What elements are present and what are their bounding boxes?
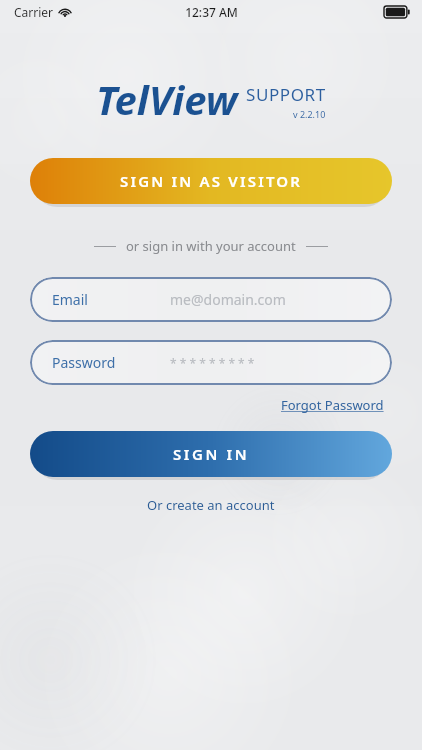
staticText: me@domain.com: [170, 290, 286, 309]
button[interactable]: Or create an account: [139, 491, 283, 519]
staticText: SIGN IN: [173, 444, 250, 464]
staticText: v 2.2.10: [293, 108, 326, 120]
staticText: Email: [52, 290, 88, 309]
button[interactable]: Forgot Password: [279, 393, 386, 417]
staticText: TelView: [96, 72, 238, 126]
staticText: SIGN IN AS VISITOR: [120, 171, 303, 191]
staticText: * * * * * * * * *: [170, 355, 255, 371]
button[interactable]: Email: [30, 277, 392, 322]
staticText: or sign in with your account: [126, 237, 296, 255]
button[interactable]: SIGN IN: [30, 431, 392, 477]
staticText: SUPPORT: [246, 83, 326, 106]
staticText: 12:37 AM: [185, 4, 238, 20]
staticText: Forgot Password: [281, 396, 384, 414]
staticText: Or create an account: [147, 496, 275, 514]
staticText: Carrier: [14, 4, 54, 20]
button[interactable]: Password: [30, 340, 392, 385]
button[interactable]: SIGN IN AS VISITOR: [30, 158, 392, 204]
staticText: Password: [52, 353, 116, 372]
